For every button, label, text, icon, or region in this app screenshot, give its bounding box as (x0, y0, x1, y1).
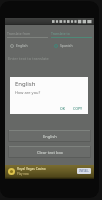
staticText: INSTALL (79, 169, 89, 173)
staticText: English (15, 80, 36, 88)
button[interactable]: Royal Vegas Casino (5, 165, 94, 179)
button[interactable]: Translate to (51, 31, 92, 38)
button[interactable]: COPY (71, 105, 85, 112)
button[interactable]: Spanish (51, 43, 92, 48)
button[interactable]: Translate from (7, 31, 48, 38)
button[interactable]: Enter text to translate (8, 56, 91, 61)
button[interactable]: English (8, 130, 91, 142)
button[interactable]: INSTALL (79, 169, 89, 173)
staticText: OK (60, 106, 65, 111)
staticText: English (43, 134, 57, 139)
staticText: Play now (17, 172, 29, 176)
staticText: English (16, 43, 28, 48)
button[interactable]: English (7, 43, 48, 48)
staticText: Clear text box (37, 150, 63, 155)
staticText: Translate from (7, 31, 31, 36)
staticText: How are you? (15, 90, 41, 95)
staticText: Enter text to translate (8, 56, 49, 61)
button[interactable]: OK (58, 105, 67, 112)
button[interactable]: Clear text box (8, 146, 91, 158)
staticText: Translate to (51, 31, 70, 36)
staticText: Spanish (60, 43, 73, 48)
staticText: COPY (73, 106, 83, 111)
staticText: Royal Vegas Casino (17, 167, 46, 171)
